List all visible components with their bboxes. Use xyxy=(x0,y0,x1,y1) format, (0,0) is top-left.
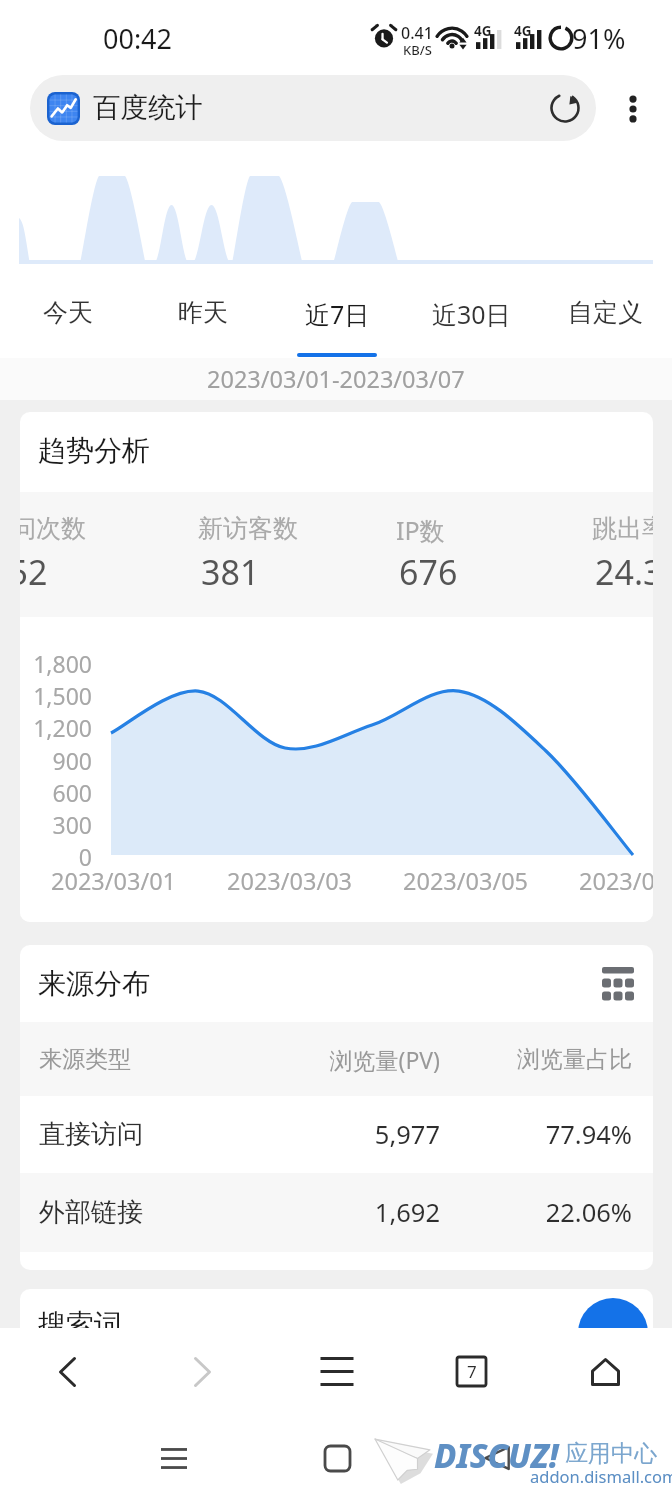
staticText: addon.dismall.com xyxy=(530,1465,672,1487)
button[interactable]: More options xyxy=(604,80,662,138)
staticText: 2023/03: xyxy=(579,865,653,897)
staticText: 300 xyxy=(22,809,92,840)
staticText: 1,500 xyxy=(22,680,92,711)
staticText: 600 xyxy=(22,777,92,808)
staticText: 2023/03/05 xyxy=(403,865,529,897)
staticText: 22.06% xyxy=(457,1195,632,1230)
staticText: 91% xyxy=(572,20,626,57)
button[interactable]: Recent apps xyxy=(136,1425,212,1491)
staticText: 跳出率 xyxy=(592,513,653,544)
button[interactable]: Forward xyxy=(135,1328,270,1415)
staticText: 4G xyxy=(514,22,532,40)
staticText: 1,692 xyxy=(265,1195,440,1230)
button[interactable]: 访问次数 xyxy=(20,492,158,617)
button[interactable]: 外部链接 xyxy=(20,1173,653,1252)
button[interactable]: Refresh xyxy=(535,78,595,138)
staticText: 5,977 xyxy=(265,1117,440,1152)
staticText: 浏览量(PV) xyxy=(265,1044,440,1075)
staticText: 浏览量占比 xyxy=(457,1045,632,1074)
staticText: 2023/03/03 xyxy=(227,865,353,897)
button[interactable]: Tabs, 7 open xyxy=(404,1328,538,1415)
staticText: KB/S xyxy=(403,41,432,59)
staticText: 1,800 xyxy=(22,648,92,679)
staticText: 7 xyxy=(467,1360,477,1383)
staticText: 今天 xyxy=(43,297,93,328)
staticText: 应用中心 xyxy=(565,1439,657,1468)
button[interactable]: 昨天 xyxy=(135,270,270,358)
button[interactable]: 直接访问 xyxy=(20,1096,653,1173)
staticText: 来源类型 xyxy=(39,1045,131,1074)
button[interactable]: Menu xyxy=(270,1328,404,1415)
staticText: DISCUZ! xyxy=(434,1433,559,1478)
button[interactable]: 跳出率 xyxy=(574,492,653,617)
staticText: 新访客数 xyxy=(198,513,298,544)
staticText: 百度统计 xyxy=(93,91,203,126)
button[interactable]: IP数 xyxy=(378,492,568,617)
button[interactable]: 百度统计 xyxy=(30,75,596,141)
button[interactable]: 自定义 xyxy=(538,270,672,358)
button[interactable]: Home xyxy=(299,1425,375,1491)
button[interactable]: Scroll to top xyxy=(578,1298,648,1368)
staticText: 自定义 xyxy=(568,297,643,328)
staticText: 趋势分析 xyxy=(38,433,150,468)
staticText: 访问次数 xyxy=(20,513,86,544)
staticText: 近30日 xyxy=(432,297,511,331)
staticText: 24.3 xyxy=(595,549,653,595)
button[interactable]: Table view xyxy=(592,957,644,1009)
staticText: 近7日 xyxy=(305,297,370,331)
staticText: 直接访问 xyxy=(39,1118,143,1151)
button[interactable]: Back xyxy=(459,1425,535,1491)
button[interactable]: 近7日 xyxy=(270,270,404,358)
staticText: 676 xyxy=(399,549,458,595)
staticText: 0 xyxy=(22,841,92,872)
staticText: 4G xyxy=(474,22,492,40)
staticText: 00:42 xyxy=(103,20,173,57)
staticText: 搜索词 xyxy=(38,1307,122,1342)
staticText: 昨天 xyxy=(178,297,228,328)
button[interactable]: 今天 xyxy=(0,270,135,358)
staticText: 900 xyxy=(22,745,92,776)
staticText: 1,200 xyxy=(22,712,92,743)
staticText: 0.41 xyxy=(401,22,433,44)
staticText: IP数 xyxy=(396,513,445,547)
staticText: 381 xyxy=(201,549,260,595)
button[interactable]: 新访客数 xyxy=(180,492,370,617)
staticText: 052 xyxy=(20,549,48,595)
staticText: 2023/03/01 xyxy=(51,865,177,897)
staticText: 77.94% xyxy=(457,1117,632,1152)
staticText: 来源分布 xyxy=(38,966,150,1001)
button[interactable]: 近30日 xyxy=(404,270,538,358)
button[interactable]: Home xyxy=(538,1328,672,1415)
staticText: 2023/03/01-2023/03/07 xyxy=(207,363,465,395)
button[interactable]: Back xyxy=(0,1328,135,1415)
staticText: 外部链接 xyxy=(39,1196,143,1229)
